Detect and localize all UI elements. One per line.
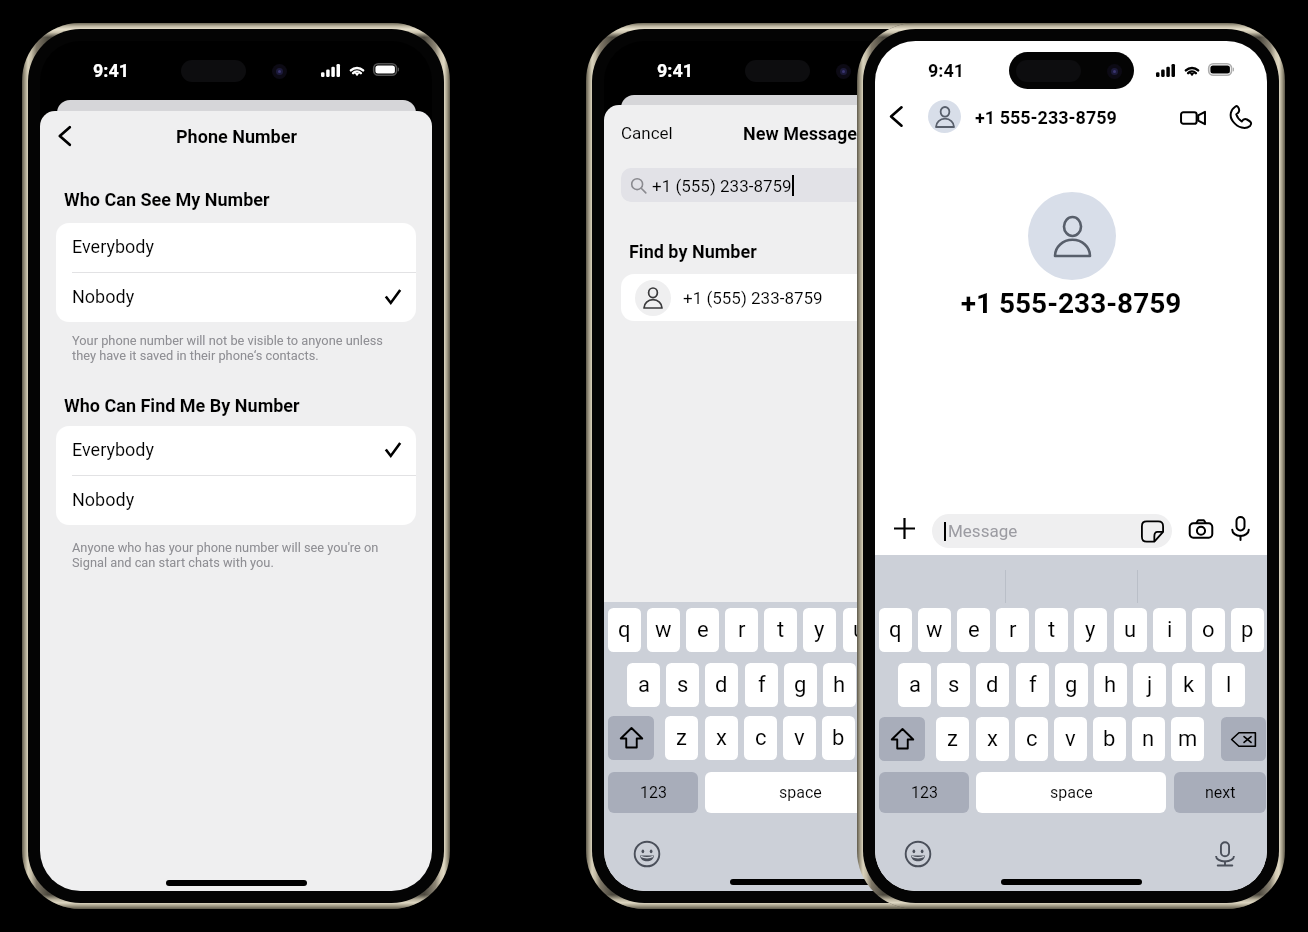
- staticText: r: [738, 617, 746, 643]
- button[interactable]: Attach: [888, 512, 920, 544]
- staticText: p: [970, 617, 983, 643]
- button[interactable]: 123: [879, 772, 969, 813]
- button[interactable]: t: [1035, 608, 1068, 652]
- button[interactable]: u: [843, 608, 876, 652]
- button[interactable]: e: [957, 608, 990, 652]
- button[interactable]: a: [898, 663, 931, 707]
- button[interactable]: e: [686, 608, 719, 652]
- button[interactable]: y: [1074, 608, 1107, 652]
- button[interactable]: l: [941, 663, 974, 707]
- button[interactable]: b: [822, 716, 855, 760]
- button[interactable]: z: [665, 716, 698, 760]
- button[interactable]: Nobody: [56, 476, 416, 525]
- button[interactable]: Message: [932, 514, 1172, 548]
- button[interactable]: Emoji: [632, 839, 661, 868]
- button[interactable]: Stickers: [1138, 517, 1166, 545]
- button[interactable]: Dictate: [1210, 839, 1239, 868]
- button[interactable]: l: [1212, 663, 1245, 707]
- button[interactable]: v: [1054, 717, 1087, 761]
- button[interactable]: Video call: [1172, 97, 1213, 138]
- button[interactable]: next: [1174, 772, 1266, 813]
- button[interactable]: a: [627, 663, 660, 707]
- button[interactable]: m: [1171, 717, 1204, 761]
- button[interactable]: Voice call: [1220, 97, 1261, 138]
- button[interactable]: r: [725, 608, 758, 652]
- staticText: d: [986, 672, 999, 698]
- button[interactable]: space: [705, 772, 895, 813]
- staticText: x: [987, 726, 998, 752]
- button[interactable]: next: [903, 772, 995, 813]
- button[interactable]: u: [1114, 608, 1147, 652]
- button[interactable]: p: [960, 608, 993, 652]
- button[interactable]: x: [976, 717, 1009, 761]
- staticText: Anyone who has your phone number will se…: [72, 540, 392, 570]
- staticText: b: [1103, 726, 1116, 752]
- button[interactable]: j: [862, 663, 895, 707]
- button[interactable]: Backspace: [1221, 717, 1266, 761]
- button[interactable]: Back: [45, 116, 85, 156]
- button[interactable]: Emoji: [903, 839, 932, 868]
- button[interactable]: y: [803, 608, 836, 652]
- staticText: 9:41: [928, 60, 965, 81]
- button[interactable]: q: [608, 608, 641, 652]
- staticText: space: [779, 783, 822, 802]
- button[interactable]: f: [745, 663, 778, 707]
- staticText: Everybody: [72, 439, 154, 460]
- button[interactable]: k: [1172, 663, 1205, 707]
- button[interactable]: r: [996, 608, 1029, 652]
- staticText: j: [1147, 672, 1153, 698]
- button[interactable]: w: [918, 608, 951, 652]
- button[interactable]: Everybody: [56, 223, 416, 272]
- staticText: q: [618, 617, 631, 643]
- button[interactable]: j: [1133, 663, 1166, 707]
- button[interactable]: o: [1192, 608, 1225, 652]
- button[interactable]: i: [882, 608, 915, 652]
- button[interactable]: h: [1094, 663, 1127, 707]
- staticText: +1 555-233-8759: [975, 107, 1117, 128]
- button[interactable]: f: [1016, 663, 1049, 707]
- button[interactable]: 123: [608, 772, 698, 813]
- button[interactable]: Cancel: [621, 123, 673, 143]
- button[interactable]: i: [1153, 608, 1186, 652]
- button[interactable]: s: [937, 663, 970, 707]
- button[interactable]: m: [900, 716, 933, 760]
- button[interactable]: x: [705, 716, 738, 760]
- button[interactable]: space: [976, 772, 1166, 813]
- button[interactable]: Shift: [879, 717, 925, 761]
- button[interactable]: z: [936, 717, 969, 761]
- button[interactable]: o: [921, 608, 954, 652]
- button[interactable]: n: [861, 716, 894, 760]
- button[interactable]: p: [1231, 608, 1264, 652]
- button[interactable]: d: [976, 663, 1009, 707]
- button[interactable]: c: [744, 716, 777, 760]
- button[interactable]: g: [1055, 663, 1088, 707]
- button[interactable]: v: [783, 716, 816, 760]
- staticText: k: [1183, 672, 1195, 698]
- button[interactable]: h: [823, 663, 856, 707]
- button[interactable]: q: [879, 608, 912, 652]
- button[interactable]: Camera: [1185, 514, 1216, 545]
- button[interactable]: c: [1015, 717, 1048, 761]
- staticText: b: [832, 725, 845, 751]
- button[interactable]: n: [1132, 717, 1165, 761]
- button[interactable]: Backspace: [950, 716, 995, 760]
- button[interactable]: s: [666, 663, 699, 707]
- button[interactable]: d: [705, 663, 738, 707]
- staticText: 123: [640, 783, 667, 802]
- button[interactable]: b: [1093, 717, 1126, 761]
- staticText: Message: [948, 521, 1018, 541]
- button[interactable]: w: [647, 608, 680, 652]
- button[interactable]: g: [784, 663, 817, 707]
- button[interactable]: Back: [878, 98, 914, 134]
- staticText: f: [1029, 672, 1037, 698]
- button[interactable]: +1 (555) 233-8759: [621, 274, 981, 321]
- button[interactable]: +1 (555) 233-8759: [621, 168, 981, 202]
- button[interactable]: Everybody: [56, 426, 416, 475]
- button[interactable]: Shift: [608, 716, 654, 760]
- button[interactable]: k: [901, 663, 934, 707]
- button[interactable]: Nobody: [56, 273, 416, 322]
- button[interactable]: Voice message: [1225, 513, 1255, 543]
- staticText: p: [1241, 617, 1254, 643]
- button[interactable]: t: [764, 608, 797, 652]
